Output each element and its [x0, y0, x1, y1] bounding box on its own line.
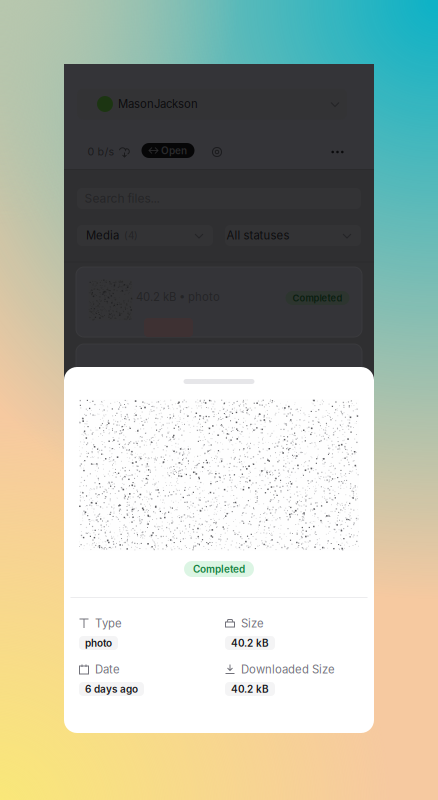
staticText: 40.2 kB [231, 683, 269, 695]
button[interactable]: MasonJackson [77, 88, 347, 119]
staticText: Date [95, 663, 120, 676]
staticText: Completed [292, 292, 342, 304]
staticText: Downloaded Size [241, 663, 335, 676]
staticText: 0 b/s [87, 145, 114, 158]
staticText: (4) [124, 229, 138, 242]
button[interactable]: Open [141, 143, 194, 158]
staticText: All statuses [226, 229, 289, 242]
staticText: 40.2 kB • photo [136, 290, 220, 304]
staticText: 40.2 kB [231, 637, 269, 649]
staticText: MasonJackson [118, 97, 198, 111]
button[interactable]: More options [328, 146, 346, 158]
staticText: Open [161, 144, 187, 157]
button[interactable]: Settings [211, 146, 223, 158]
staticText: Size [241, 617, 264, 630]
button[interactable]: 40.2 kB • photo [76, 267, 362, 337]
staticText: photo [85, 637, 112, 649]
staticText: Type [95, 617, 122, 630]
staticText: Completed [193, 563, 245, 575]
button[interactable]: All statuses [225, 225, 361, 246]
staticText: 6 days ago [85, 683, 138, 695]
button[interactable]: Download [117, 146, 131, 158]
staticText: Media [86, 229, 119, 242]
button[interactable]: Media [77, 225, 213, 246]
staticText: Search files... [84, 191, 159, 206]
